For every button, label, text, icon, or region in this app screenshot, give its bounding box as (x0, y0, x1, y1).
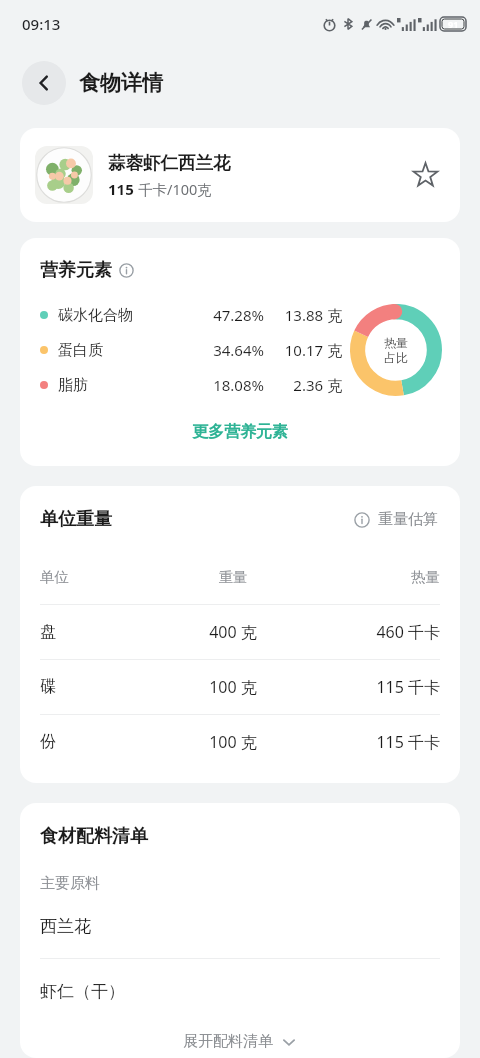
staticText: 蒜蓉虾仁西兰花 (108, 152, 231, 174)
button[interactable]: 重量估算 (350, 506, 442, 533)
staticText: 盘 (40, 622, 56, 642)
staticText: 占比 (384, 350, 408, 365)
button[interactable]: Back (22, 61, 66, 105)
staticText: 13.88 克 (280, 305, 342, 325)
staticText: 营养元素 (40, 259, 112, 282)
staticText: 400 克 (164, 621, 302, 643)
staticText: 份 (40, 732, 56, 752)
staticText: 2.36 克 (280, 375, 342, 395)
staticText: 千卡/100克 (138, 179, 212, 199)
staticText: 115 千卡 (302, 731, 440, 753)
button[interactable]: 蒜蓉虾仁西兰花 (20, 128, 460, 222)
button[interactable]: 展开配料清单 (20, 1032, 460, 1051)
staticText: 18.08% (194, 375, 264, 395)
staticText: 虾仁（干） (40, 981, 125, 1002)
staticText: 重量 (164, 568, 302, 586)
staticText: 重量估算 (378, 510, 438, 529)
staticText: 34.64% (194, 340, 264, 360)
staticText: 09:13 (22, 14, 61, 34)
staticText: 热量 (384, 335, 408, 350)
staticText: 食物详情 (79, 70, 163, 96)
staticText: 10.17 克 (280, 340, 342, 360)
staticText: 展开配料清单 (183, 1032, 273, 1051)
staticText: 100 克 (164, 676, 302, 698)
staticText: 蛋白质 (58, 341, 103, 360)
staticText: 热量 (302, 568, 440, 586)
staticText: 115 (108, 179, 134, 199)
staticText: 西兰花 (40, 916, 91, 937)
staticText: 47.28% (194, 305, 264, 325)
staticText: 单位 (40, 568, 69, 586)
staticText: 100 克 (164, 731, 302, 753)
staticText: 460 千卡 (302, 621, 440, 643)
staticText: 主要原料 (40, 874, 100, 893)
staticText: 单位重量 (40, 508, 112, 531)
button[interactable]: 更多营养元素 (182, 418, 298, 446)
staticText: 碳水化合物 (58, 306, 133, 325)
staticText: 食材配料清单 (40, 825, 148, 848)
button[interactable]: Favorite (405, 155, 445, 195)
staticText: 碟 (40, 677, 56, 697)
staticText: 91 (448, 18, 459, 30)
staticText: 115 千卡 (302, 676, 440, 698)
staticText: 脂肪 (58, 376, 88, 395)
